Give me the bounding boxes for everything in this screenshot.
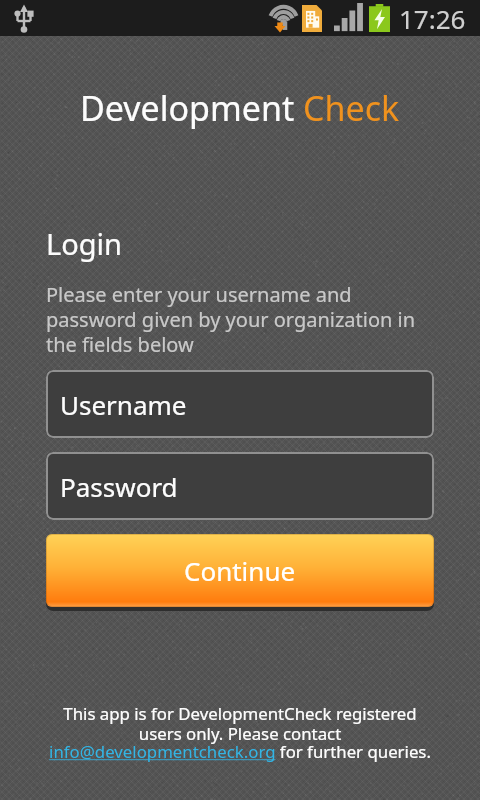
staticText: This app is for DevelopmentCheck registe…	[44, 702, 436, 745]
staticText: Please enter your username and password …	[46, 281, 434, 358]
staticText: 17:26	[399, 1, 466, 36]
button[interactable]: Continue	[46, 534, 434, 607]
staticText: Development Check	[80, 85, 400, 131]
staticText: Password	[60, 469, 178, 504]
button[interactable]: info@developmentcheck.org for further qu…	[49, 740, 431, 763]
other: Work profile	[302, 5, 322, 32]
button[interactable]: Password	[46, 452, 434, 520]
other: USB connected	[0, 0, 44, 36]
staticText: info@developmentcheck.org for further qu…	[49, 740, 431, 763]
other: Battery charging	[369, 4, 390, 32]
other: Mobile signal strength	[334, 3, 363, 32]
staticText: Continue	[184, 553, 296, 588]
staticText: Login	[46, 224, 122, 263]
other: Wi-Fi downloading	[270, 4, 297, 31]
button[interactable]: Username	[46, 370, 434, 438]
staticText: Username	[60, 387, 187, 422]
